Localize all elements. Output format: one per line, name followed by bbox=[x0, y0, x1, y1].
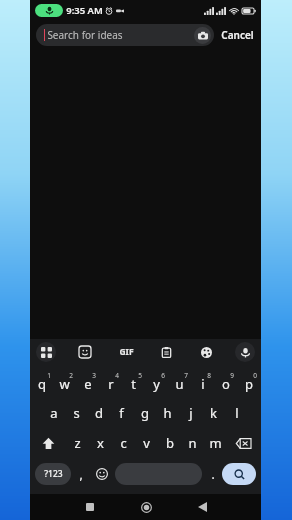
button[interactable]: q bbox=[31, 368, 53, 398]
button[interactable]: Search bbox=[222, 463, 256, 485]
staticText: i bbox=[201, 375, 205, 393]
button[interactable]: Search with camera bbox=[194, 27, 211, 44]
staticText: u bbox=[175, 375, 184, 393]
staticText: 3 bbox=[92, 371, 96, 380]
button[interactable]: Home bbox=[118, 494, 174, 520]
staticText: 2 bbox=[69, 371, 73, 380]
button[interactable]: a bbox=[43, 398, 65, 428]
button[interactable]: z bbox=[65, 428, 89, 458]
button[interactable]: k bbox=[202, 398, 225, 428]
button[interactable]: h bbox=[156, 398, 179, 428]
staticText: b bbox=[166, 434, 174, 452]
button[interactable]: c bbox=[112, 428, 135, 458]
button[interactable]: e bbox=[76, 368, 99, 398]
staticText: e bbox=[84, 375, 92, 393]
staticText: y bbox=[153, 375, 160, 393]
staticText: m bbox=[209, 434, 222, 452]
staticText: 8 bbox=[207, 371, 211, 380]
button[interactable]: j bbox=[179, 398, 202, 428]
staticText: Cancel bbox=[221, 28, 254, 42]
button[interactable]: . bbox=[204, 458, 222, 490]
button[interactable]: u bbox=[168, 368, 191, 398]
button[interactable]: Clipboard bbox=[156, 342, 176, 362]
staticText: g bbox=[141, 404, 149, 422]
button[interactable]: , bbox=[71, 458, 91, 490]
staticText: 7 bbox=[184, 371, 188, 380]
button[interactable]: Voice input bbox=[235, 342, 255, 362]
button[interactable]: f bbox=[110, 398, 133, 428]
button[interactable]: d bbox=[87, 398, 110, 428]
button[interactable]: o bbox=[214, 368, 237, 398]
staticText: a bbox=[50, 404, 58, 422]
button[interactable]: p bbox=[237, 368, 260, 398]
staticText: 6 bbox=[161, 371, 165, 380]
staticText: d bbox=[95, 404, 103, 422]
button[interactable]: y bbox=[145, 368, 168, 398]
staticText: l bbox=[235, 404, 239, 422]
button[interactable]: Stickers bbox=[75, 342, 95, 362]
button[interactable]: i bbox=[191, 368, 214, 398]
staticText: t bbox=[131, 375, 136, 393]
button[interactable]: Search for ideas bbox=[36, 24, 214, 46]
button[interactable]: Emoji bbox=[91, 458, 113, 490]
button[interactable]: n bbox=[181, 428, 204, 458]
staticText: z bbox=[74, 434, 81, 452]
staticText: 9:35 AM bbox=[66, 4, 103, 17]
button[interactable]: Backspace bbox=[227, 428, 259, 458]
button[interactable]: Themes bbox=[196, 342, 216, 362]
button[interactable]: g bbox=[133, 398, 156, 428]
button[interactable]: GIF bbox=[115, 341, 137, 363]
staticText: 9 bbox=[230, 371, 234, 380]
staticText: v bbox=[143, 434, 150, 452]
staticText: 1 bbox=[47, 371, 51, 380]
staticText: 0 bbox=[253, 371, 257, 380]
staticText: q bbox=[38, 375, 46, 393]
staticText: r bbox=[108, 375, 114, 393]
staticText: c bbox=[120, 434, 127, 452]
button[interactable]: Cancel bbox=[220, 25, 255, 45]
button[interactable]: l bbox=[225, 398, 248, 428]
staticText: 5 bbox=[138, 371, 142, 380]
button[interactable]: x bbox=[89, 428, 112, 458]
staticText: 4 bbox=[115, 371, 119, 380]
button[interactable]: s bbox=[65, 398, 87, 428]
staticText: GIF bbox=[119, 346, 134, 358]
staticText: w bbox=[59, 375, 70, 393]
staticText: j bbox=[189, 404, 193, 422]
button[interactable]: Back bbox=[174, 494, 230, 520]
staticText: n bbox=[188, 434, 197, 452]
button[interactable]: m bbox=[204, 428, 227, 458]
staticText: x bbox=[97, 434, 104, 452]
button[interactable]: ?123 bbox=[35, 463, 71, 485]
staticText: o bbox=[222, 375, 230, 393]
staticText: f bbox=[119, 404, 124, 422]
button[interactable]: Toolbar menu bbox=[36, 342, 56, 362]
staticText: . bbox=[211, 466, 215, 482]
button[interactable]: w bbox=[53, 368, 76, 398]
button[interactable]: Shift bbox=[32, 428, 65, 458]
button[interactable]: b bbox=[158, 428, 181, 458]
button[interactable]: r bbox=[99, 368, 122, 398]
staticText: h bbox=[163, 404, 172, 422]
button[interactable]: t bbox=[122, 368, 145, 398]
staticText: , bbox=[79, 466, 83, 482]
staticText: k bbox=[210, 404, 217, 422]
button[interactable]: Recents bbox=[62, 494, 118, 520]
staticText: ?123 bbox=[44, 468, 63, 480]
staticText: s bbox=[73, 404, 80, 422]
button[interactable]: Space bbox=[115, 463, 202, 485]
button[interactable]: v bbox=[135, 428, 158, 458]
staticText: Search for ideas bbox=[47, 28, 123, 42]
staticText: p bbox=[245, 375, 253, 393]
